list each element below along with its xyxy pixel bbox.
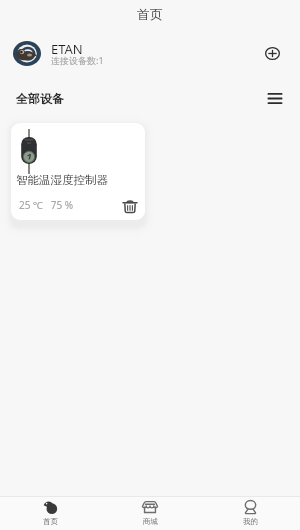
staticText: 商城 <box>143 517 158 526</box>
button[interactable]: Add device <box>259 40 285 66</box>
button[interactable]: 首页 <box>0 497 100 526</box>
staticText: 25 ℃ 75 % <box>19 198 74 212</box>
button[interactable]: Delete <box>119 195 141 217</box>
staticText: 我的 <box>243 517 258 526</box>
button[interactable]: 我的 <box>200 497 300 526</box>
staticText: 全部设备 <box>16 91 64 106</box>
button[interactable]: ETAN <box>0 34 300 72</box>
staticText: ETAN <box>51 40 83 58</box>
staticText: 首页 <box>43 517 58 526</box>
staticText: 首页 <box>137 6 163 22</box>
button[interactable]: 智能温湿度控制器 <box>11 123 145 220</box>
button[interactable]: 商城 <box>100 497 200 526</box>
button[interactable]: Menu <box>265 88 285 108</box>
staticText: 连接设备数:1 <box>51 54 104 66</box>
staticText: 智能温湿度控制器 <box>16 173 108 187</box>
